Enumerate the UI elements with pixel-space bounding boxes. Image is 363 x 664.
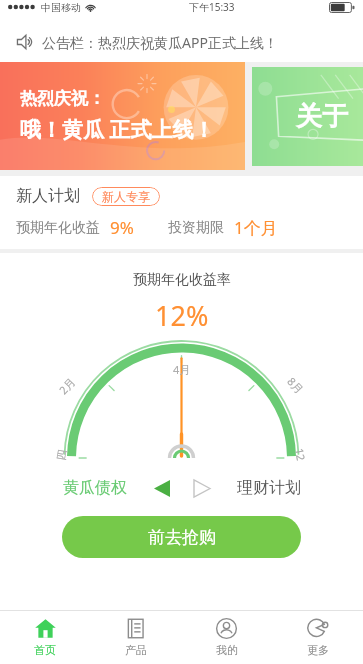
button[interactable]: 我的 <box>181 611 272 664</box>
staticText: 2月 <box>55 374 79 397</box>
staticText: 1个月 <box>234 216 278 239</box>
button[interactable]: 热烈庆祝： <box>0 62 245 170</box>
button[interactable]: 理财计划 <box>231 474 307 502</box>
staticText: 哦！黄瓜 正式上线！ <box>20 115 215 144</box>
button[interactable]: 更多 <box>272 611 363 664</box>
staticText: 预期年化收益 <box>16 219 100 237</box>
staticText: 产品 <box>125 643 147 657</box>
staticText: 中国移动 <box>41 1 81 14</box>
staticText: 预期年化收益率 <box>133 271 231 289</box>
staticText: 四 <box>54 448 69 462</box>
button[interactable]: 前去抢购 <box>62 516 301 558</box>
staticText: 公告栏：热烈庆祝黄瓜APP正式上线！ <box>42 33 278 52</box>
staticText: 新人计划 <box>16 186 80 206</box>
staticText: 关于 <box>296 100 348 133</box>
staticText: 理财计划 <box>237 478 301 498</box>
staticText: 4月 <box>173 362 191 377</box>
button[interactable]: 公告栏：热烈庆祝黄瓜APP正式上线！ <box>0 22 363 62</box>
staticText: 前去抢购 <box>148 527 216 548</box>
button[interactable]: 产品 <box>90 611 181 664</box>
button[interactable]: 黄瓜债权 <box>57 474 133 502</box>
button[interactable]: 首页 <box>0 611 90 664</box>
staticText: 热烈庆祝： <box>20 88 105 109</box>
staticText: 黄瓜债权 <box>63 478 127 498</box>
button[interactable]: 上一项 <box>147 475 177 501</box>
button[interactable]: 下一项 <box>187 475 217 501</box>
staticText: 下午15:33 <box>189 0 235 14</box>
button[interactable]: 关于 <box>252 67 363 166</box>
staticText: 12 <box>292 447 309 462</box>
staticText: 8月 <box>284 374 308 397</box>
staticText: 9% <box>110 216 134 239</box>
staticText: 投资期限 <box>168 219 224 237</box>
staticText: 首页 <box>34 643 56 657</box>
button[interactable]: 新人计划 <box>0 176 363 249</box>
staticText: 我的 <box>216 643 238 657</box>
staticText: 新人专享 <box>102 189 150 204</box>
staticText: 12% <box>155 297 209 334</box>
staticText: 更多 <box>307 643 329 657</box>
